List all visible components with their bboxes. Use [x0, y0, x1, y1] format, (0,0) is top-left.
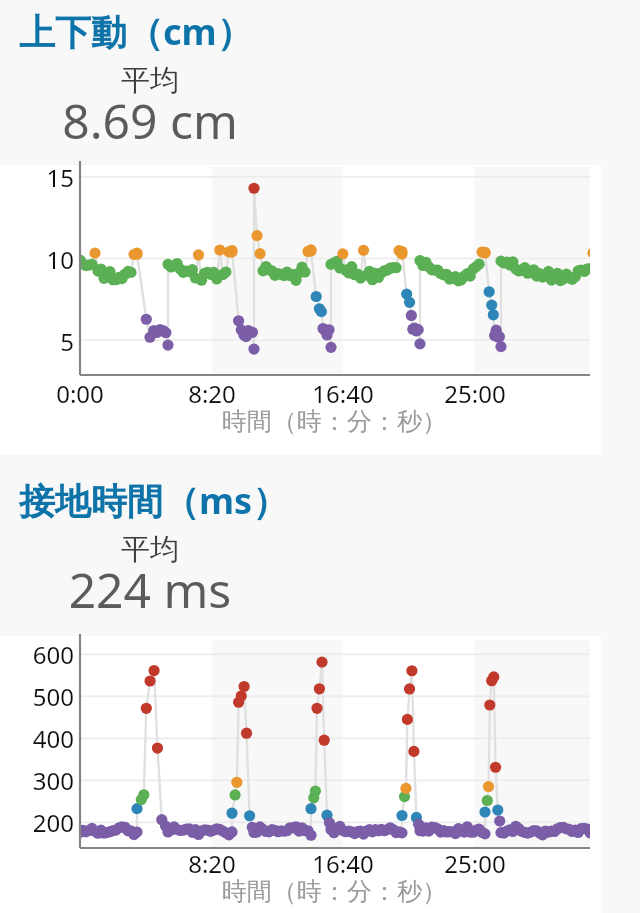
staticText: 600 — [32, 638, 74, 671]
staticText: 224 ms — [0, 557, 300, 622]
staticText: 5 — [60, 325, 74, 358]
staticText: 25:00 — [444, 377, 506, 410]
staticText: 8:20 — [188, 847, 236, 880]
staticText: 時間（時：分：秒） — [222, 876, 447, 907]
staticText: 200 — [32, 806, 74, 839]
staticText: 500 — [32, 680, 74, 713]
staticText: 8:20 — [188, 377, 236, 410]
staticText: 平均 — [0, 531, 300, 568]
staticText: 25:00 — [444, 847, 506, 880]
staticText: 0:00 — [56, 377, 104, 410]
staticText: 400 — [32, 722, 74, 755]
staticText: 平均 — [0, 62, 300, 99]
staticText: 16:40 — [312, 377, 374, 410]
staticText: 300 — [32, 764, 74, 797]
staticText: 15 — [46, 161, 74, 194]
staticText: 16:40 — [312, 847, 374, 880]
staticText: 10 — [46, 243, 74, 276]
staticText: 8.69 cm — [0, 88, 300, 153]
staticText: 上下動（cm） — [19, 7, 253, 56]
staticText: 接地時間（ms） — [19, 476, 289, 525]
staticText: 時間（時：分：秒） — [222, 406, 447, 437]
